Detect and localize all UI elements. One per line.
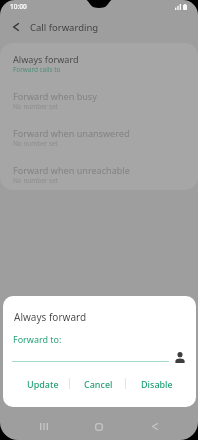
button[interactable]: Forward when unreachable (0, 161, 198, 190)
staticText: No number set (13, 102, 59, 111)
button[interactable]: Home (85, 413, 113, 440)
button[interactable]: Update (21, 375, 65, 393)
staticText: Forward when busy (13, 90, 97, 102)
staticText: Disable (141, 378, 173, 390)
button[interactable]: Disable (135, 375, 179, 393)
staticText: No number set (13, 176, 59, 185)
staticText: No number set (13, 139, 59, 148)
staticText: Always forward (13, 53, 79, 65)
button[interactable]: Navigate up (4, 16, 28, 40)
button[interactable]: Forward when busy (0, 87, 198, 124)
staticText: Forward to: (13, 333, 62, 345)
staticText: Forward calls to (13, 65, 61, 74)
button[interactable]: Choose contact (171, 348, 189, 366)
button[interactable]: Back (141, 413, 169, 440)
button[interactable]: Cancel (78, 375, 119, 393)
staticText: Forward when unanswered (13, 127, 130, 139)
staticText: Update (27, 378, 59, 390)
staticText: 10:00 (10, 2, 27, 11)
staticText: Cancel (84, 378, 113, 390)
button[interactable]: Recents (30, 413, 58, 440)
button[interactable]: Always forward (0, 50, 198, 87)
staticText: Forward when unreachable (13, 164, 130, 176)
staticText: Always forward (14, 310, 87, 324)
button[interactable]: Forward when unanswered (0, 124, 198, 161)
staticText: Call forwarding (30, 21, 99, 34)
